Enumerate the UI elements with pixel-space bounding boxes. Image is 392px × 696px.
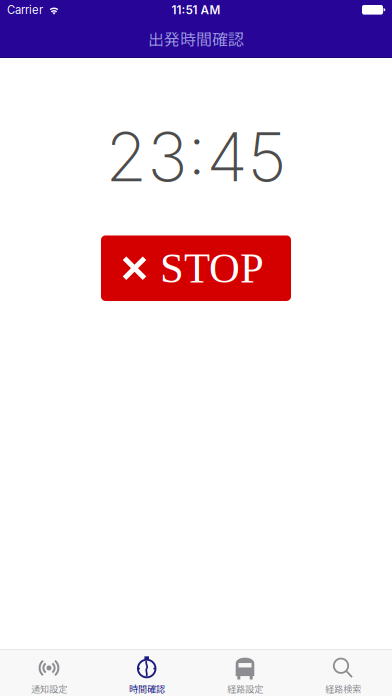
staticText: 出発時間確認 xyxy=(148,27,244,50)
staticText: Carrier xyxy=(7,3,43,17)
staticText: 11:51 AM xyxy=(171,3,220,17)
staticText: 経路検索 xyxy=(325,682,361,695)
button[interactable]: STOP xyxy=(101,235,291,301)
button[interactable]: 通知設定 xyxy=(0,650,98,696)
staticText: 経路設定 xyxy=(227,682,263,695)
button[interactable]: 時間確認 xyxy=(98,650,196,696)
staticText: 23:45 xyxy=(105,116,286,197)
staticText: 通知設定 xyxy=(31,682,67,695)
staticText: STOP xyxy=(160,245,264,292)
button[interactable]: 経路検索 xyxy=(294,650,392,696)
staticText: 時間確認 xyxy=(129,682,165,695)
button[interactable]: 経路設定 xyxy=(196,650,294,696)
